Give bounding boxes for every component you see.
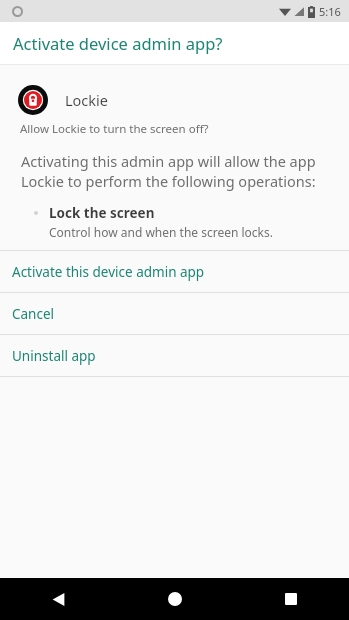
staticText: Control how and when the screen locks. (49, 224, 273, 240)
button[interactable]: Home (117, 578, 233, 620)
staticText: Lockie (65, 90, 108, 110)
staticText: Lock the screen (49, 204, 155, 222)
button[interactable]: Uninstall app (0, 335, 349, 376)
staticText: Uninstall app (12, 347, 96, 365)
button[interactable]: Activate this device admin app (0, 251, 349, 292)
staticText: Activate device admin app? (13, 32, 223, 54)
button[interactable]: Recent apps (233, 578, 349, 620)
staticText: Activating this admin app will allow the… (21, 151, 316, 192)
button[interactable]: Back (0, 578, 117, 620)
staticText: 5:16 (319, 4, 341, 19)
staticText: Activate this device admin app (12, 263, 205, 281)
staticText: Allow Lockie to turn the screen off? (20, 121, 209, 137)
staticText: Cancel (12, 305, 55, 323)
button[interactable]: Cancel (0, 293, 349, 334)
